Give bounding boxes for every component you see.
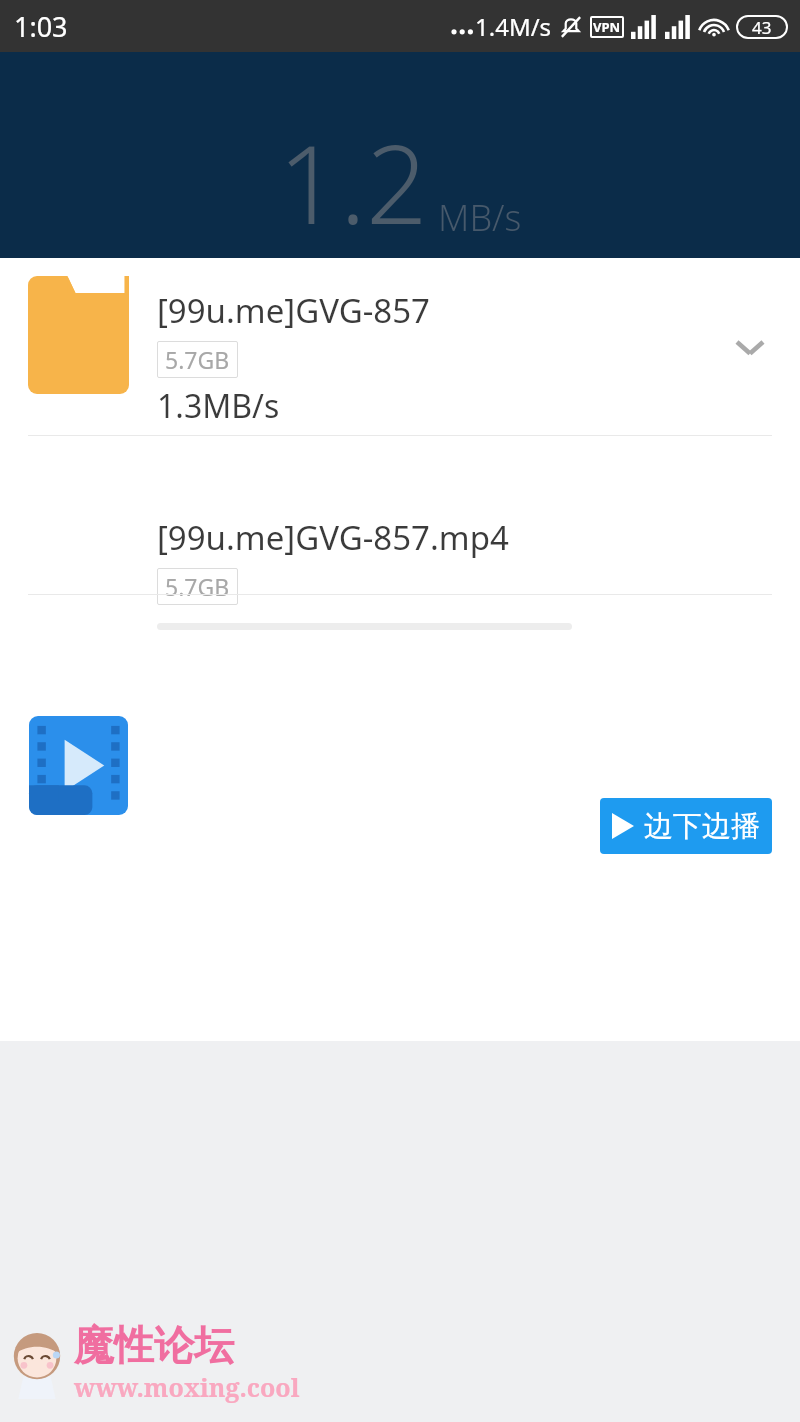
staticText: 1:03 — [14, 8, 68, 45]
staticText: 5.7GB — [165, 344, 230, 375]
staticText: 5.7GB — [165, 571, 230, 602]
staticText: 43 — [752, 16, 772, 39]
staticText: MB/s — [438, 193, 522, 242]
staticText: [99u.me]GVG-857 — [157, 288, 430, 333]
staticText: 边下边播 — [644, 808, 760, 845]
button[interactable] — [0, 557, 800, 717]
button[interactable]: 边下边播 — [600, 798, 772, 854]
staticText: 1.4M/s — [475, 10, 552, 43]
staticText: VPN — [593, 18, 621, 36]
staticText: [99u.me]GVG-857.mp4 — [157, 515, 509, 560]
staticText: 1.3MB/s — [157, 384, 280, 428]
staticText: 1.2 — [278, 109, 428, 256]
button[interactable]: [99u.me]GVG-857 — [0, 258, 800, 436]
button[interactable]: Expand — [722, 319, 778, 375]
staticText: www.moxing.cool — [74, 1370, 300, 1404]
staticText: 魔性论坛 — [74, 1320, 234, 1370]
